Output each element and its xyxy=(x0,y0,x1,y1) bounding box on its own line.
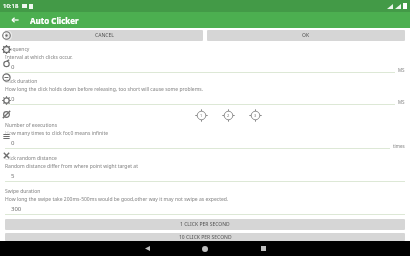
staticText: 10 CLICK PER SECOND xyxy=(179,234,232,241)
staticText: Frequency xyxy=(5,46,30,53)
button[interactable]: Close xyxy=(1,150,12,161)
staticText: Click duration xyxy=(5,78,38,85)
staticText: How long the click holds down before rel… xyxy=(5,86,204,93)
staticText: How many times to click for,0 means infi… xyxy=(5,130,109,137)
staticText: CANCEL xyxy=(95,32,114,39)
button[interactable]: Click target 3 xyxy=(249,109,262,122)
staticText: MS xyxy=(398,67,405,73)
button[interactable]: CANCEL xyxy=(5,30,203,41)
button[interactable]: Home xyxy=(194,241,216,256)
staticText: Interval at which clicks occur. xyxy=(5,54,73,61)
staticText: How long the swipe take 200ms-500ms woul… xyxy=(5,196,229,203)
staticText: 0 xyxy=(11,63,15,71)
staticText: 300 xyxy=(11,205,22,213)
staticText: 0 xyxy=(11,95,15,103)
button[interactable]: 1 CLICK PER SECOND xyxy=(5,219,405,230)
staticText: 2 xyxy=(227,113,230,118)
staticText: Random distance differ from where point … xyxy=(5,163,138,170)
staticText: 10:18 xyxy=(3,2,19,10)
button[interactable]: Menu xyxy=(1,131,12,142)
staticText: 5 xyxy=(11,172,15,180)
button[interactable]: Settings xyxy=(1,44,12,55)
button[interactable]: OK xyxy=(207,30,405,41)
button[interactable]: Tap mode xyxy=(1,58,12,69)
staticText: 0 xyxy=(11,139,15,147)
staticText: 3 xyxy=(254,113,257,118)
staticText: times xyxy=(393,143,405,149)
button[interactable]: Remove xyxy=(1,72,12,83)
staticText: MS xyxy=(398,99,405,105)
button[interactable]: Swipe mode xyxy=(1,95,12,106)
button[interactable]: Hide xyxy=(1,109,12,120)
button[interactable]: Back xyxy=(136,241,158,256)
button[interactable]: Click target 2 xyxy=(222,109,235,122)
staticText: 1 CLICK PER SECOND xyxy=(180,221,230,228)
button[interactable]: Recent apps xyxy=(252,241,274,256)
button[interactable]: Record position xyxy=(1,30,12,41)
staticText: OK xyxy=(302,32,310,39)
button[interactable]: 10 CLICK PER SECOND xyxy=(5,233,405,241)
button[interactable]: Click target 1 xyxy=(195,109,208,122)
staticText: Auto Clicker xyxy=(30,15,79,26)
staticText: Number of executions xyxy=(5,122,58,129)
staticText: Swipe duration xyxy=(5,188,41,195)
button[interactable]: Back xyxy=(8,13,22,27)
staticText: Click random distance xyxy=(5,155,57,162)
staticText: 1 xyxy=(200,113,203,118)
